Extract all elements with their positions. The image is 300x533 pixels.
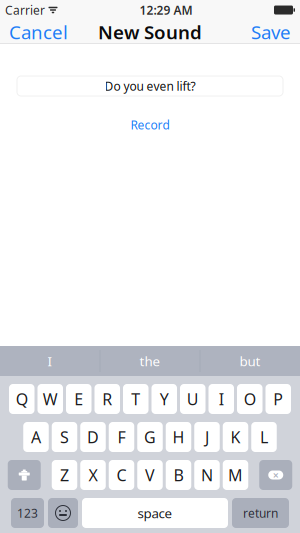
- staticText: A: [31, 426, 41, 448]
- staticText: the: [139, 352, 160, 370]
- button[interactable]: I: [0, 346, 100, 376]
- button[interactable]: C: [109, 460, 134, 490]
- staticText: Record: [130, 117, 169, 133]
- staticText: E: [74, 388, 83, 410]
- staticText: Cancel: [9, 20, 68, 44]
- staticText: but: [239, 352, 260, 370]
- button[interactable]: but: [200, 346, 300, 376]
- staticText: M: [228, 464, 243, 486]
- staticText: T: [131, 388, 140, 410]
- button[interactable]: Shift: [8, 460, 41, 490]
- button[interactable]: M: [223, 460, 248, 490]
- button[interactable]: O: [237, 384, 262, 414]
- button[interactable]: N: [194, 460, 220, 490]
- button[interactable]: space: [82, 498, 228, 528]
- button[interactable]: L: [251, 422, 277, 452]
- button[interactable]: Cancel: [0, 20, 77, 44]
- staticText: Q: [16, 388, 28, 410]
- staticText: F: [117, 426, 125, 448]
- staticText: return: [243, 505, 278, 521]
- staticText: S: [60, 426, 69, 448]
- button[interactable]: Emoji: [48, 498, 78, 528]
- button[interactable]: 123: [11, 498, 44, 528]
- button[interactable]: return: [232, 498, 289, 528]
- staticText: Save: [251, 20, 291, 44]
- button[interactable]: A: [23, 422, 49, 452]
- button[interactable]: U: [180, 384, 205, 414]
- button[interactable]: J: [194, 422, 220, 452]
- staticText: X: [88, 464, 97, 486]
- staticText: ×: [273, 468, 279, 482]
- button[interactable]: Z: [52, 460, 77, 490]
- button[interactable]: X: [80, 460, 106, 490]
- staticText: Y: [160, 388, 169, 410]
- button[interactable]: R: [94, 384, 120, 414]
- staticText: G: [144, 426, 156, 448]
- button[interactable]: H: [166, 422, 191, 452]
- staticText: New Sound: [98, 20, 202, 44]
- staticText: C: [116, 464, 126, 486]
- button[interactable]: G: [137, 422, 163, 452]
- staticText: 123: [17, 505, 38, 521]
- button[interactable]: Y: [151, 384, 177, 414]
- staticText: Carrier: [5, 2, 45, 18]
- staticText: space: [137, 504, 172, 522]
- staticText: V: [145, 464, 155, 486]
- button[interactable]: Save: [242, 20, 300, 44]
- staticText: H: [172, 426, 184, 448]
- staticText: D: [87, 426, 99, 448]
- staticText: 12:29 AM: [139, 2, 192, 18]
- button[interactable]: W: [37, 384, 63, 414]
- button[interactable]: I: [208, 384, 234, 414]
- staticText: Z: [60, 464, 69, 486]
- button[interactable]: Record: [120, 114, 179, 136]
- staticText: W: [43, 388, 58, 410]
- staticText: K: [230, 426, 240, 448]
- staticText: U: [187, 388, 199, 410]
- button[interactable]: P: [265, 384, 291, 414]
- button[interactable]: S: [52, 422, 77, 452]
- staticText: I: [47, 352, 52, 370]
- button[interactable]: T: [123, 384, 148, 414]
- staticText: B: [173, 464, 183, 486]
- button[interactable]: F: [109, 422, 134, 452]
- staticText: N: [201, 464, 213, 486]
- staticText: R: [102, 388, 112, 410]
- button[interactable]: V: [137, 460, 163, 490]
- button[interactable]: K: [223, 422, 248, 452]
- button[interactable]: E: [66, 384, 91, 414]
- staticText: I: [219, 388, 224, 410]
- button[interactable]: the: [100, 346, 200, 376]
- staticText: P: [273, 388, 283, 410]
- button[interactable]: Delete: [259, 460, 292, 490]
- staticText: J: [205, 426, 209, 448]
- staticText: L: [260, 426, 268, 448]
- staticText: Do you even lift?: [104, 78, 195, 94]
- button[interactable]: Q: [9, 384, 34, 414]
- button[interactable]: D: [80, 422, 106, 452]
- staticText: O: [244, 388, 256, 410]
- button[interactable]: B: [166, 460, 191, 490]
